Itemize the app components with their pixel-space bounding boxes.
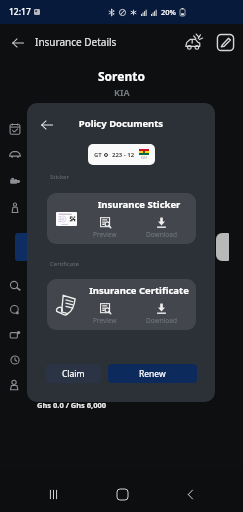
- button[interactable]: Menu item 6: [8, 303, 22, 317]
- button[interactable]: Menu item 7: [8, 328, 22, 342]
- staticText: Insurance Certificate: [84, 284, 194, 297]
- staticText: Insurance Details: [35, 35, 117, 49]
- button[interactable]: Menu item 4: [8, 201, 22, 215]
- staticText: Download: [146, 230, 177, 239]
- staticText: Claim: [62, 368, 85, 380]
- button[interactable]: Download: [143, 303, 179, 325]
- staticText: Sticker: [50, 173, 69, 181]
- button[interactable]: Menu item 9: [8, 378, 22, 392]
- staticText: KIA: [114, 86, 130, 98]
- button[interactable]: Menu item 3: [8, 174, 22, 188]
- button[interactable]: Claim: [46, 364, 101, 383]
- button[interactable]: Renew: [108, 364, 197, 383]
- staticText: GT: [94, 151, 102, 159]
- staticText: Policy Documents: [27, 117, 215, 130]
- button[interactable]: Back: [5, 30, 30, 55]
- button[interactable]: Menu item 2: [8, 147, 22, 161]
- staticText: Certificate: [50, 260, 79, 268]
- button[interactable]: Recent apps: [38, 479, 68, 509]
- button[interactable]: Vehicle status: [181, 29, 207, 55]
- staticText: GH: [141, 155, 147, 160]
- button[interactable]: Home: [107, 479, 137, 509]
- button[interactable]: Menu item 1: [8, 122, 22, 136]
- staticText: Download: [146, 316, 177, 325]
- staticText: 20%: [161, 7, 176, 17]
- button[interactable]: Preview: [87, 217, 123, 239]
- button[interactable]: Menu item 8: [8, 353, 22, 367]
- staticText: Insurance Sticker: [84, 198, 194, 211]
- staticText: Ghs 0.0 / Ghs 6,000: [37, 400, 107, 410]
- staticText: Preview: [93, 316, 117, 325]
- button[interactable]: Edit: [212, 29, 238, 55]
- button[interactable]: Back: [175, 479, 205, 509]
- button[interactable]: Close: [35, 113, 59, 137]
- button[interactable]: Menu item 5: [8, 278, 22, 292]
- button[interactable]: Insurance Certificate: [47, 279, 196, 330]
- staticText: Sorento: [98, 68, 145, 84]
- button[interactable]: Preview: [87, 303, 123, 325]
- staticText: Preview: [93, 230, 117, 239]
- button[interactable]: Download: [143, 217, 179, 239]
- staticText: 223 - 12: [112, 151, 135, 159]
- staticText: 12:17: [9, 6, 31, 18]
- button[interactable]: Insurance Sticker: [47, 193, 196, 244]
- staticText: Renew: [139, 368, 166, 380]
